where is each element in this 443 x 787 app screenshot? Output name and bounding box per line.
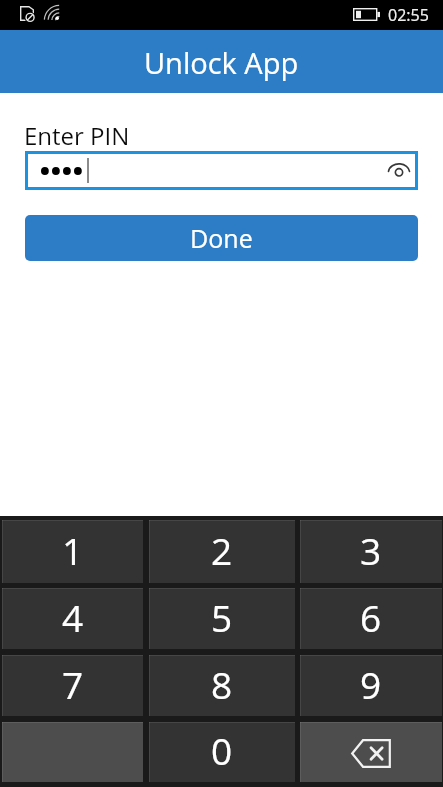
button[interactable]: 7	[2, 655, 143, 716]
button[interactable]: Done	[25, 215, 418, 261]
button[interactable]: 4	[2, 588, 143, 649]
button[interactable]: 6	[300, 588, 442, 649]
staticText: 02:55	[388, 4, 429, 26]
staticText: 6	[360, 592, 382, 642]
staticText: 1	[62, 525, 84, 575]
button[interactable]: Show PIN	[385, 157, 413, 185]
button[interactable]: 9	[300, 655, 442, 716]
button[interactable]: 0	[149, 722, 295, 782]
staticText: 0	[211, 725, 233, 775]
staticText: 4	[62, 592, 84, 642]
staticText: Done	[190, 221, 253, 255]
button[interactable]: 3	[300, 520, 442, 583]
button[interactable]: 1	[2, 520, 143, 583]
staticText: 9	[360, 659, 382, 709]
staticText: 5	[211, 592, 233, 642]
staticText: 3	[360, 525, 382, 575]
button[interactable]: 5	[149, 588, 295, 649]
button[interactable]: 8	[149, 655, 295, 716]
staticText: Enter PIN	[24, 119, 130, 152]
staticText: 2	[211, 525, 233, 575]
button[interactable]: Show PIN	[25, 151, 418, 190]
button[interactable]: 2	[149, 520, 295, 583]
staticText: 7	[62, 659, 84, 709]
button[interactable]: Backspace	[300, 722, 442, 782]
staticText: Unlock App	[144, 43, 299, 82]
staticText: 8	[211, 659, 233, 709]
